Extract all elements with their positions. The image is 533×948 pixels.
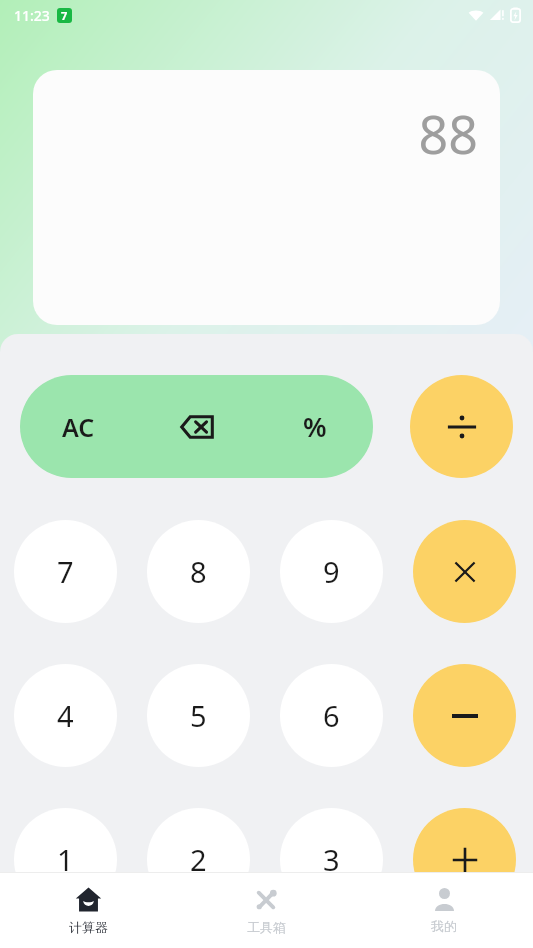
button[interactable]: 8 (147, 520, 250, 623)
staticText: 6 (323, 696, 340, 735)
button[interactable]: Backspace (137, 375, 256, 478)
staticText: AC (62, 410, 95, 444)
staticText: 7 (57, 552, 74, 591)
staticText: 8 (190, 552, 207, 591)
button[interactable]: 计算器 (0, 873, 177, 948)
button[interactable]: Operator (413, 808, 516, 882)
button[interactable]: 2 (147, 808, 250, 882)
button[interactable]: 3 (280, 808, 383, 882)
staticText: 2 (190, 840, 207, 879)
staticText: 9 (323, 552, 340, 591)
staticText: 11:23 (14, 6, 50, 25)
button[interactable]: AC (20, 375, 137, 478)
staticText: 1 (57, 840, 74, 879)
staticText: 5 (190, 696, 207, 735)
button[interactable]: 工具箱 (177, 873, 355, 948)
button[interactable]: ÷ (410, 375, 513, 478)
button[interactable]: 9 (280, 520, 383, 623)
staticText: % (303, 408, 327, 445)
button[interactable]: 5 (147, 664, 250, 767)
button[interactable]: 1 (14, 808, 117, 882)
staticText: 工具箱 (247, 919, 286, 935)
button[interactable]: Operator (413, 664, 516, 767)
staticText: 88 (418, 98, 478, 169)
button[interactable]: 6 (280, 664, 383, 767)
button[interactable]: Operator (413, 520, 516, 623)
button[interactable]: 我的 (355, 873, 533, 948)
staticText: 4 (57, 696, 74, 735)
staticText: 7 (61, 8, 68, 23)
staticText: 我的 (431, 918, 457, 934)
staticText: 计算器 (69, 919, 108, 935)
button[interactable]: % (256, 375, 373, 478)
staticText: 3 (323, 840, 340, 879)
button[interactable]: 7 (14, 520, 117, 623)
button[interactable]: 4 (14, 664, 117, 767)
